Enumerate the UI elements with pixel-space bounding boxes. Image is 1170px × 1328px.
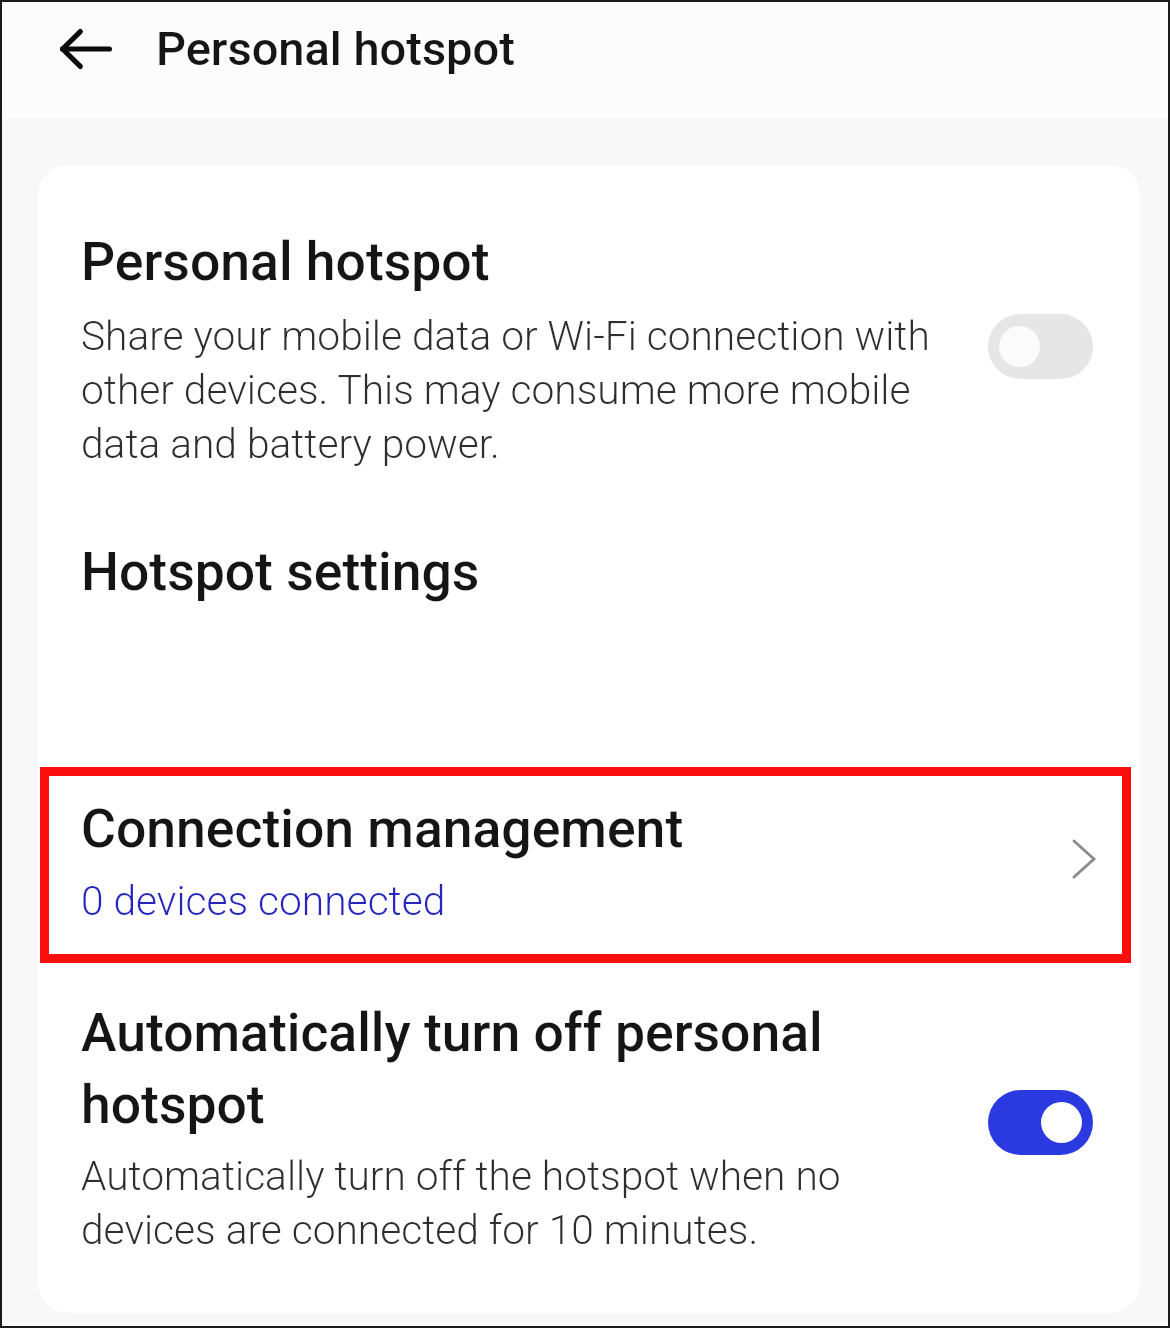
- button[interactable]: [38, 985, 1140, 1285]
- staticText: Personal hotspot: [81, 232, 490, 292]
- staticText: Connection management: [81, 799, 684, 859]
- staticText: Automatically turn off the hotspot when …: [81, 1147, 871, 1255]
- button[interactable]: [40, 767, 1129, 963]
- staticText: Hotspot settings: [81, 542, 480, 602]
- staticText: 0 devices connected: [81, 872, 446, 926]
- button[interactable]: Turn off: [988, 1090, 1093, 1155]
- staticText: Personal hotspot: [156, 22, 515, 76]
- staticText: Automatically turn off personal hotspot: [81, 994, 871, 1138]
- staticText: Share your mobile data or Wi-Fi connecti…: [81, 307, 936, 469]
- button[interactable]: Back: [26, 14, 144, 84]
- button[interactable]: [38, 200, 1140, 540]
- button[interactable]: Turn on: [988, 314, 1093, 379]
